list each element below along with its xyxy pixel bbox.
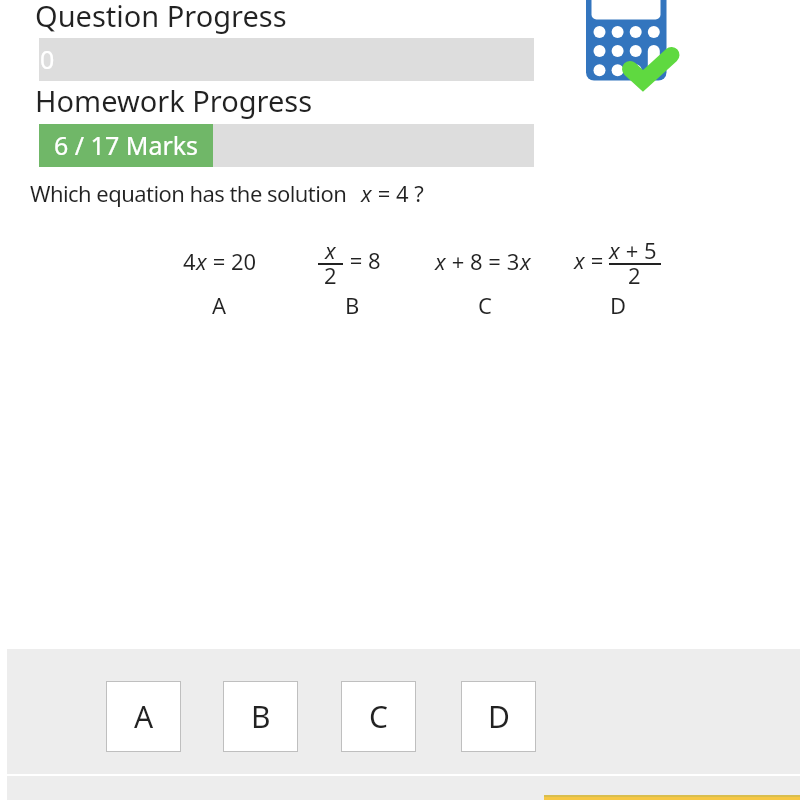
button[interactable]: 6 / 17 Marks [39, 124, 534, 167]
staticText: x [609, 235, 620, 265]
staticText: D [610, 290, 627, 320]
staticText: 2 [324, 260, 337, 290]
staticText: x [325, 235, 336, 265]
staticText: A [134, 696, 154, 737]
button[interactable]: A [106, 681, 181, 752]
staticText: = [585, 245, 604, 275]
staticText: D [488, 696, 510, 737]
staticText: 2 [628, 260, 641, 290]
staticText: 4 [183, 246, 196, 276]
staticText: x [435, 246, 446, 276]
button[interactable]: D [461, 681, 536, 752]
staticText: x [520, 246, 531, 276]
staticText: A [212, 290, 227, 320]
staticText: Which equation has the solution [30, 178, 347, 208]
button[interactable]: C [341, 681, 416, 752]
staticText: Homework Progress [35, 81, 313, 120]
staticText: B [345, 290, 360, 320]
staticText: x [361, 178, 372, 208]
staticText: x [574, 245, 585, 275]
staticText: Question Progress [35, 0, 287, 35]
staticText: = 8 [344, 245, 381, 275]
staticText: C [369, 696, 388, 737]
staticText: C [478, 290, 492, 320]
staticText: = 4 ? [372, 178, 424, 208]
button[interactable]: Calculator [586, 0, 681, 93]
staticText: 6 / 17 Marks [54, 128, 199, 162]
staticText: B [251, 696, 271, 737]
button[interactable]: B [223, 681, 298, 752]
staticText: = 20 [207, 246, 257, 276]
staticText: x [196, 246, 207, 276]
staticText: + 8 = 3 [446, 246, 520, 276]
staticText: 0 [40, 42, 55, 76]
staticText: + 5 [620, 235, 657, 265]
